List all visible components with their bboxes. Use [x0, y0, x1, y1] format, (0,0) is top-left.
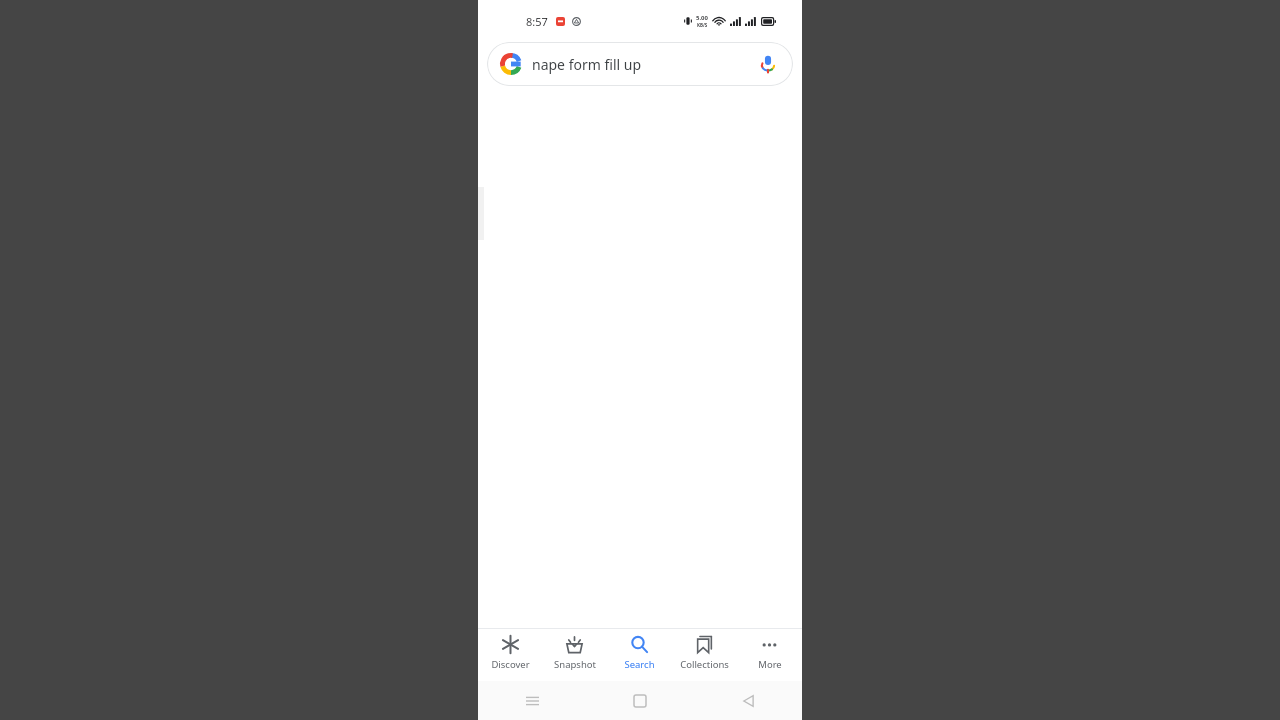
button[interactable]: Discover [478, 629, 542, 681]
staticText: KB/S [697, 22, 708, 28]
button[interactable]: Recent apps [478, 681, 586, 720]
staticText: Discover [491, 658, 530, 671]
staticText: More [758, 658, 782, 671]
staticText: Search [624, 658, 655, 671]
staticText: Collections [680, 658, 729, 671]
button[interactable]: Collections [672, 629, 737, 681]
staticText: nape form fill up [532, 55, 748, 74]
staticText: 8:57 [526, 14, 548, 29]
staticText: 5.00 [696, 14, 708, 22]
button[interactable]: Snapshot [542, 629, 607, 681]
button[interactable]: nape form fill up [487, 42, 793, 86]
button[interactable]: Back [694, 681, 802, 720]
button[interactable]: Search [607, 629, 672, 681]
button[interactable]: Home [586, 681, 694, 720]
button[interactable]: More [737, 629, 802, 681]
staticText: Snapshot [554, 658, 596, 671]
button[interactable]: Voice search [756, 52, 780, 76]
